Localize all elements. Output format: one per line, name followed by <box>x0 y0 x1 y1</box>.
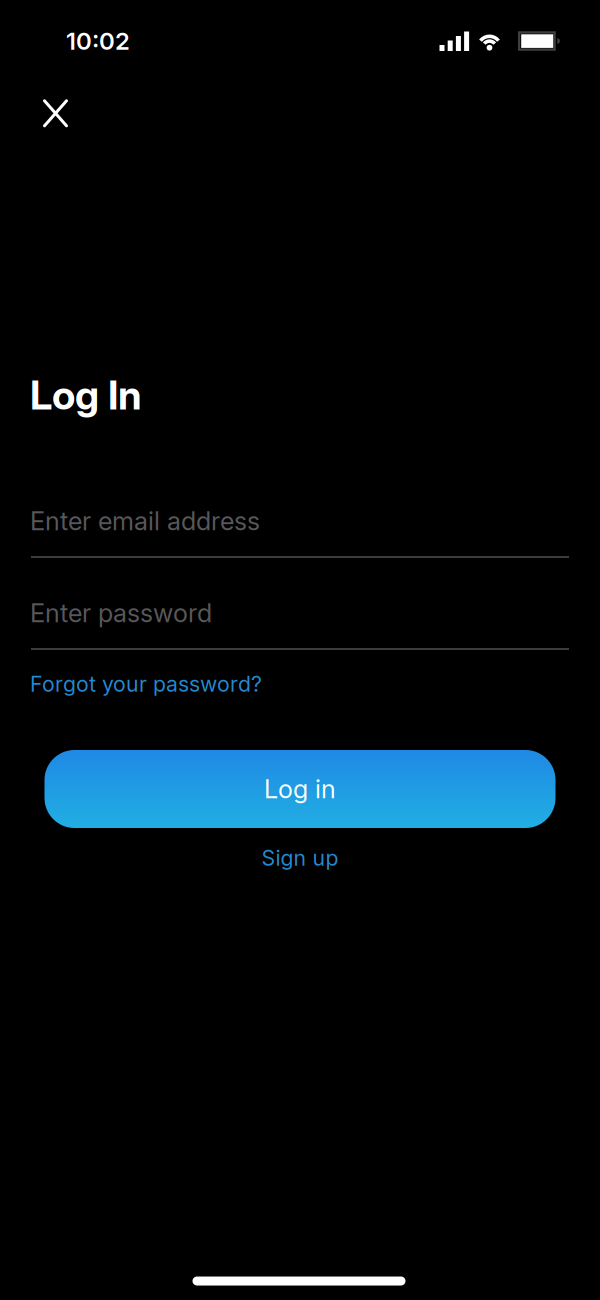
button[interactable]: Sign up <box>261 845 338 871</box>
staticText: Forgot your password? <box>30 671 262 697</box>
button[interactable]: Close <box>33 91 77 135</box>
staticText: 10:02 <box>66 27 130 55</box>
button[interactable]: Forgot your password? <box>30 671 262 697</box>
button[interactable]: Enter password <box>30 581 566 645</box>
staticText: Sign up <box>261 845 338 871</box>
staticText: Log In <box>30 371 142 419</box>
staticText: Enter password <box>30 598 212 628</box>
button[interactable]: Log in <box>44 750 555 828</box>
staticText: Enter email address <box>30 506 260 536</box>
button[interactable]: Enter email address <box>30 489 566 553</box>
staticText: Log in <box>264 774 336 804</box>
